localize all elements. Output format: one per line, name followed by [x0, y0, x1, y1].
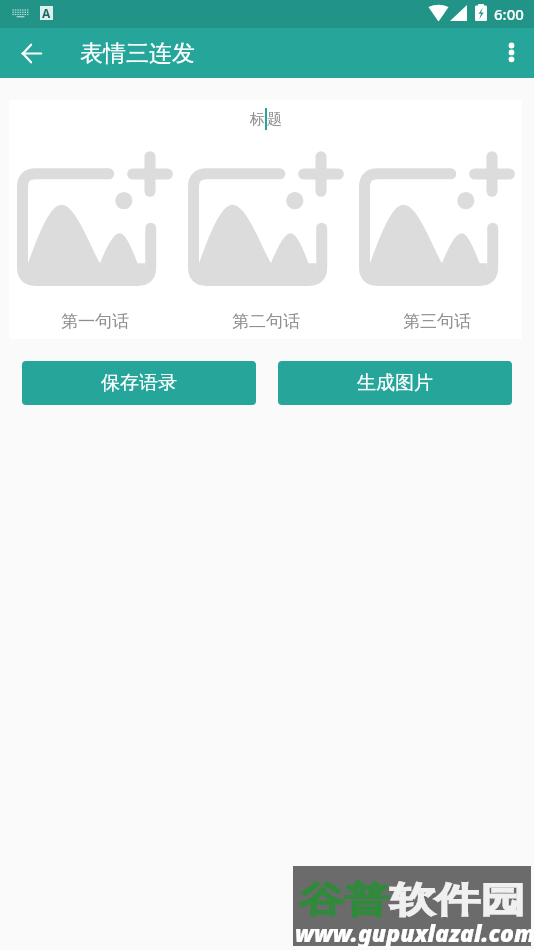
staticText: 生成图片: [357, 371, 433, 395]
staticText: 第二句话: [232, 311, 300, 332]
button[interactable]: Back: [7, 29, 55, 77]
staticText: 第三句话: [403, 311, 471, 332]
staticText: 6:00: [494, 4, 524, 24]
button[interactable]: Add photo: [9, 151, 180, 332]
staticText: 标: [250, 110, 265, 129]
button[interactable]: Add photo: [180, 151, 351, 332]
staticText: 谷普: [299, 878, 390, 922]
button[interactable]: 保存语录: [22, 361, 256, 405]
staticText: 保存语录: [101, 371, 177, 395]
button[interactable]: More options: [486, 29, 534, 77]
staticText: 题: [267, 110, 282, 129]
button[interactable]: Add photo: [351, 151, 522, 332]
staticText: 表情三连发: [80, 39, 195, 68]
button[interactable]: 生成图片: [278, 361, 512, 405]
staticText: A: [42, 5, 51, 19]
staticText: 软件园: [390, 878, 526, 922]
staticText: www.gupuxlazal.com: [295, 917, 533, 948]
staticText: 第一句话: [61, 311, 129, 332]
